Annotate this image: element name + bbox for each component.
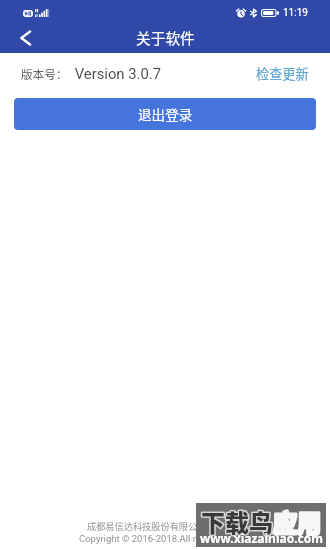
staticText: 检查更新 bbox=[256, 64, 309, 83]
staticText: 成都易信达科技股份有限公司版权所有 bbox=[87, 519, 244, 532]
staticText: 应用 bbox=[273, 504, 321, 539]
staticText: Copyright © 2016-2018.All right reserved bbox=[79, 533, 251, 544]
staticText: 11:19 bbox=[283, 7, 308, 19]
button[interactable]: 检查更新 bbox=[256, 64, 309, 83]
staticText: 下载鸟 bbox=[201, 504, 273, 539]
staticText: 版本号： Version 3.0.7 bbox=[21, 65, 161, 82]
staticText: 退出登录 bbox=[138, 104, 193, 124]
button[interactable]: 退出登录 bbox=[14, 98, 316, 130]
staticText: 关于软件 bbox=[136, 27, 195, 48]
button[interactable]: Back bbox=[0, 22, 44, 53]
staticText: 下载鸟 bbox=[201, 504, 273, 539]
staticText: 应用 bbox=[273, 504, 321, 539]
staticText: www.xiazainiao.com bbox=[200, 530, 323, 546]
